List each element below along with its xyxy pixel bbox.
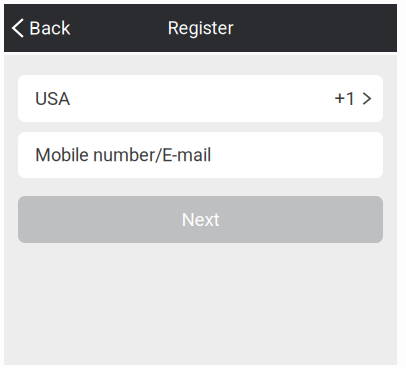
button[interactable]: USA bbox=[18, 75, 383, 122]
staticText: Back bbox=[29, 17, 70, 39]
button[interactable]: Back bbox=[4, 4, 82, 52]
staticText: Mobile number/E-mail bbox=[35, 144, 211, 166]
staticText: +1 bbox=[334, 88, 355, 109]
staticText: Register bbox=[167, 17, 233, 39]
staticText: Next bbox=[181, 209, 219, 230]
staticText: USA bbox=[35, 88, 70, 109]
button[interactable]: Mobile number/E-mail bbox=[18, 132, 383, 178]
button[interactable]: Next bbox=[18, 196, 383, 243]
